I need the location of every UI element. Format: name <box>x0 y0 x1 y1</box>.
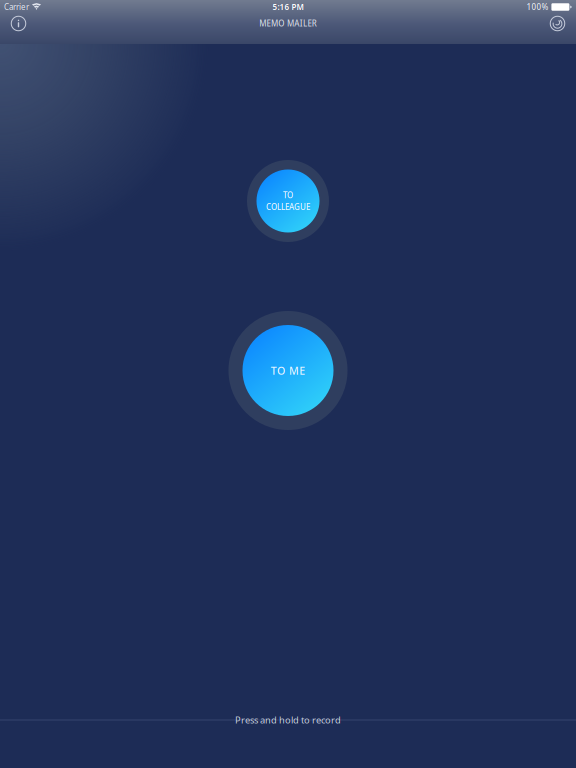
button[interactable]: TO <box>247 160 329 242</box>
staticText: Press and hold to record <box>235 714 341 726</box>
staticText: COLLEAGUE <box>266 201 310 212</box>
staticText: 5:16 PM <box>272 2 303 12</box>
staticText: MEMO MAILER <box>259 18 317 29</box>
staticText: TO <box>283 190 293 200</box>
staticText: 100% <box>526 2 548 12</box>
button[interactable]: TO ME <box>228 311 347 430</box>
staticText: TO ME <box>271 363 305 378</box>
staticText: Carrier <box>4 2 29 12</box>
button[interactable]: Recordings <box>539 14 576 33</box>
button[interactable]: Info <box>0 14 37 33</box>
